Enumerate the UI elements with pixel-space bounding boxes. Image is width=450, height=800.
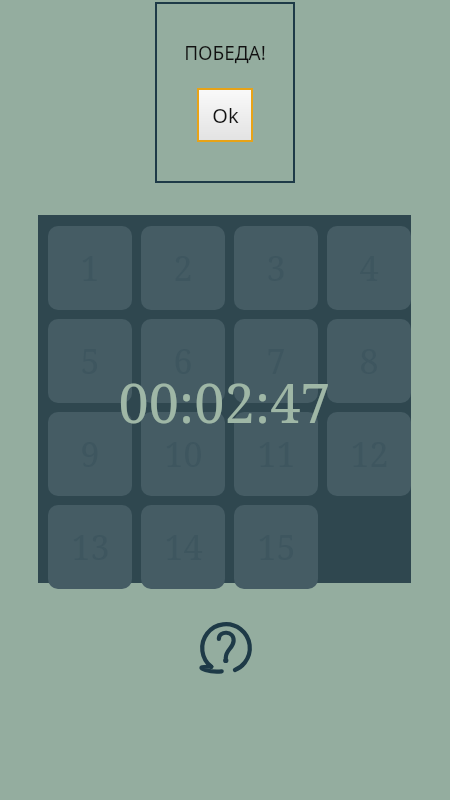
button[interactable]: Ok — [197, 88, 253, 142]
button[interactable]: 15 — [234, 505, 318, 589]
button[interactable]: 9 — [48, 412, 132, 496]
button[interactable]: 8 — [327, 319, 411, 403]
button[interactable]: 5 — [48, 319, 132, 403]
staticText: ПОБЕДА! — [184, 40, 266, 66]
button[interactable]: 7 — [234, 319, 318, 403]
button[interactable]: 14 — [141, 505, 225, 589]
staticText: Ok — [212, 102, 239, 129]
button[interactable]: 11 — [234, 412, 318, 496]
staticText: 00:02:47 — [118, 365, 331, 435]
button[interactable]: 6 — [141, 319, 225, 403]
button[interactable]: 13 — [48, 505, 132, 589]
button[interactable]: 10 — [141, 412, 225, 496]
button[interactable]: Help — [196, 618, 256, 678]
